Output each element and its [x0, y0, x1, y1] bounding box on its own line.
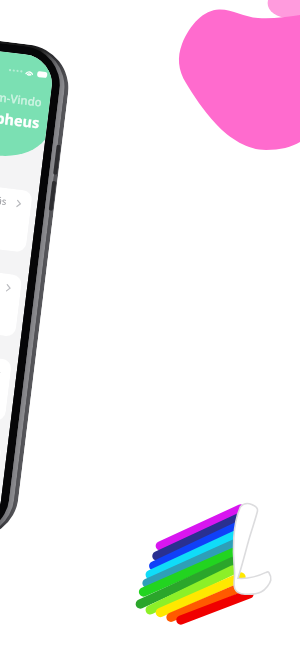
staticText: Morpheus [0, 104, 41, 132]
button[interactable]: Sobre nós [0, 338, 12, 422]
button[interactable]: Voltar Atrás [0, 169, 33, 253]
staticText: Voltar Atrás [0, 189, 7, 208]
staticText: Bem-Vindo [0, 87, 43, 111]
button[interactable]: Ajuda [0, 422, 2, 506]
button[interactable]: Definições [0, 254, 22, 337]
